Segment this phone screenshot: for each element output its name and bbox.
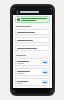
button[interactable]: Back <box>15 10 19 14</box>
button[interactable] <box>15 45 50 51</box>
button[interactable] <box>15 29 50 35</box>
button[interactable] <box>15 37 50 43</box>
button[interactable] <box>41 60 48 64</box>
button[interactable] <box>41 80 48 84</box>
button[interactable] <box>15 16 50 23</box>
button[interactable] <box>15 68 50 76</box>
button[interactable] <box>15 58 50 66</box>
button[interactable] <box>15 78 50 86</box>
button[interactable] <box>41 70 48 74</box>
